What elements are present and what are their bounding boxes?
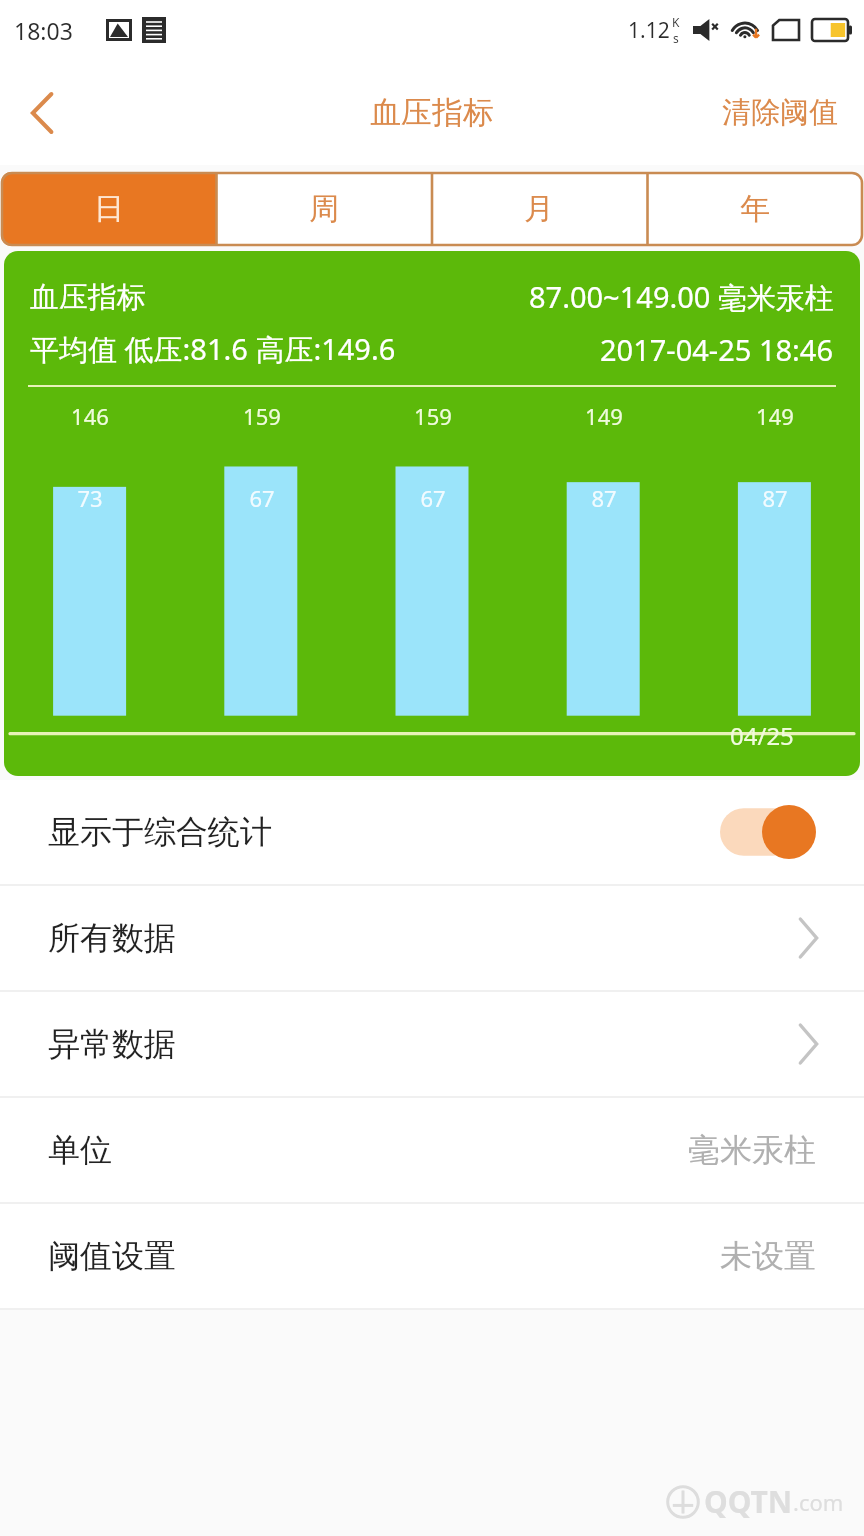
staticText: 单位 — [48, 1130, 112, 1170]
staticText: s — [673, 30, 679, 46]
button[interactable]: Toggle show in summary — [720, 805, 816, 859]
staticText: 149 — [585, 401, 623, 431]
staticText: .com — [793, 1487, 844, 1517]
button[interactable]: 年 — [647, 172, 863, 246]
button[interactable]: 显示于综合统计 — [0, 780, 864, 884]
staticText: 月 — [524, 190, 554, 228]
staticText: 67 — [249, 483, 275, 513]
button[interactable]: 单位 — [0, 1098, 864, 1202]
staticText: 1.12 — [628, 16, 670, 45]
staticText: 未设置 — [720, 1236, 816, 1276]
staticText: QQTN — [704, 1481, 793, 1522]
staticText: 所有数据 — [48, 918, 176, 958]
button[interactable]: 异常数据 — [0, 992, 864, 1096]
button[interactable]: 阈值设置 — [0, 1204, 864, 1308]
button[interactable]: 所有数据 — [0, 886, 864, 990]
staticText: K — [672, 14, 680, 30]
staticText: 年 — [740, 190, 770, 228]
button[interactable]: Back — [0, 70, 86, 156]
staticText: 毫米汞柱 — [688, 1130, 816, 1170]
staticText: 阈值设置 — [48, 1236, 176, 1276]
staticText: 血压指标 — [370, 93, 494, 132]
staticText: 04/25 — [730, 719, 794, 752]
staticText: 日 — [94, 190, 124, 228]
staticText: 146 — [71, 401, 109, 431]
button[interactable]: 日 — [1, 172, 216, 246]
staticText: 平均值 低压:81.6 高压:149.6 — [30, 329, 396, 369]
staticText: 周 — [309, 190, 339, 228]
staticText: 159 — [243, 401, 281, 431]
staticText: 87.00~149.00 毫米汞柱 — [529, 277, 834, 317]
staticText: 2017-04-25 18:46 — [600, 330, 834, 369]
button[interactable]: 清除阈值 — [712, 82, 848, 143]
staticText: 异常数据 — [48, 1024, 176, 1064]
staticText: 血压指标 — [30, 279, 146, 316]
staticText: 18:03 — [14, 15, 73, 46]
staticText: 149 — [756, 401, 794, 431]
button[interactable]: 月 — [431, 172, 647, 246]
staticText: 159 — [414, 401, 452, 431]
button[interactable]: 周 — [216, 172, 431, 246]
staticText: 87 — [591, 483, 617, 513]
staticText: 清除阈值 — [722, 94, 838, 131]
staticText: 67 — [420, 483, 446, 513]
staticText: 73 — [77, 483, 103, 513]
staticText: 87 — [762, 483, 788, 513]
staticText: 显示于综合统计 — [48, 812, 272, 852]
